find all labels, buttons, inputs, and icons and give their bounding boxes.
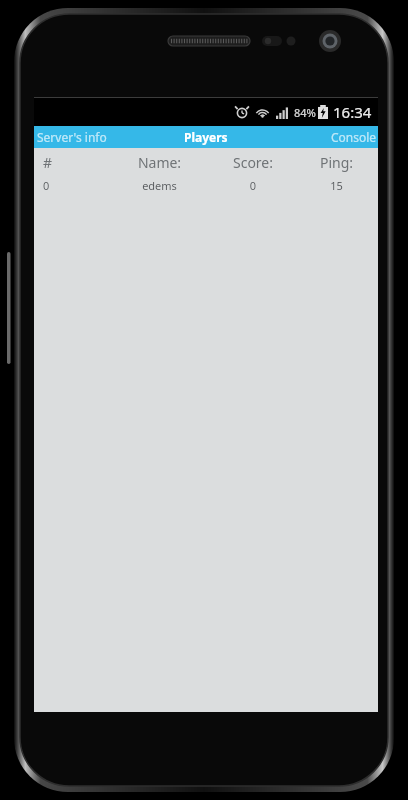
staticText: # [43, 153, 108, 172]
button[interactable]: Console [263, 126, 378, 148]
staticText: 16:34 [333, 102, 372, 122]
staticText: Score: [211, 153, 295, 172]
button[interactable]: Server's info [34, 126, 148, 148]
button[interactable]: Players [148, 126, 263, 148]
staticText: Players [184, 129, 228, 145]
staticText: 15 [295, 178, 378, 193]
staticText: edems [108, 178, 211, 193]
staticText: Console [331, 129, 377, 145]
button[interactable]: 0 [34, 176, 378, 195]
staticText: Server's info [37, 129, 107, 145]
staticText: Ping: [295, 153, 378, 172]
staticText: 0 [43, 178, 108, 193]
staticText: 0 [211, 178, 295, 193]
staticText: Name: [108, 153, 211, 172]
staticText: 84% [294, 105, 316, 120]
